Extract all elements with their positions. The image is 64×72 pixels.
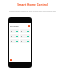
button[interactable]: Home — [10, 59, 12, 61]
button[interactable]: Profile — [28, 25, 30, 27]
staticText: Control every device in your home from o… — [9, 10, 56, 12]
button[interactable] — [10, 34, 19, 38]
button[interactable] — [20, 39, 30, 43]
staticText: Smart Home Control — [17, 3, 48, 7]
button[interactable] — [20, 34, 30, 38]
button[interactable] — [10, 39, 19, 43]
staticText: My Home — [10, 25, 19, 27]
button[interactable] — [20, 29, 30, 33]
button[interactable] — [10, 29, 19, 33]
